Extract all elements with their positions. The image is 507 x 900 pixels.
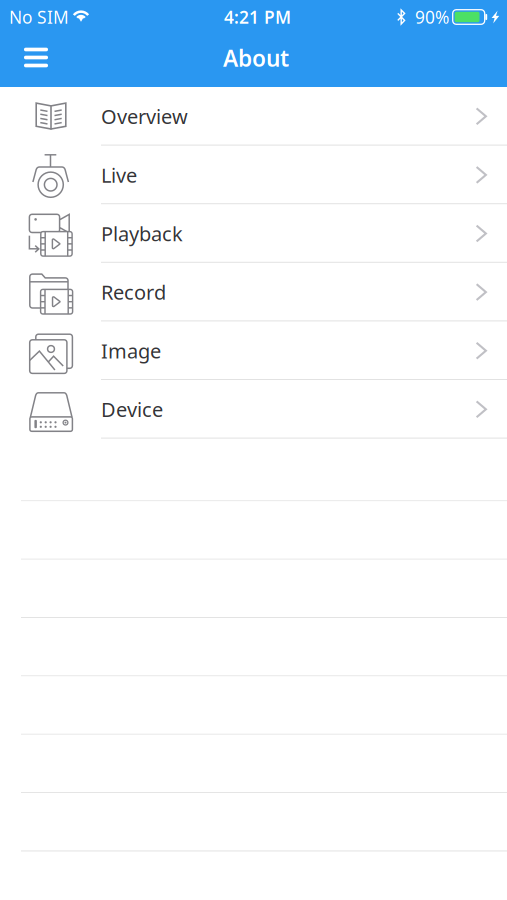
- button[interactable]: Device: [0, 380, 507, 439]
- staticText: Image: [101, 337, 161, 364]
- staticText: Overview: [101, 103, 188, 130]
- staticText: No SIM: [9, 5, 69, 28]
- staticText: 4:21 PM: [224, 5, 291, 28]
- button[interactable]: Live: [0, 146, 507, 204]
- staticText: Record: [101, 279, 166, 305]
- button[interactable]: Image: [0, 321, 507, 380]
- staticText: Playback: [101, 220, 183, 247]
- staticText: Live: [101, 162, 137, 188]
- button[interactable]: Playback: [0, 204, 507, 263]
- button[interactable]: Overview: [0, 87, 507, 146]
- button[interactable]: Menu: [12, 36, 60, 84]
- staticText: Device: [101, 396, 163, 423]
- staticText: 90%: [415, 5, 449, 28]
- staticText: About: [223, 43, 289, 73]
- button[interactable]: Record: [0, 263, 507, 321]
